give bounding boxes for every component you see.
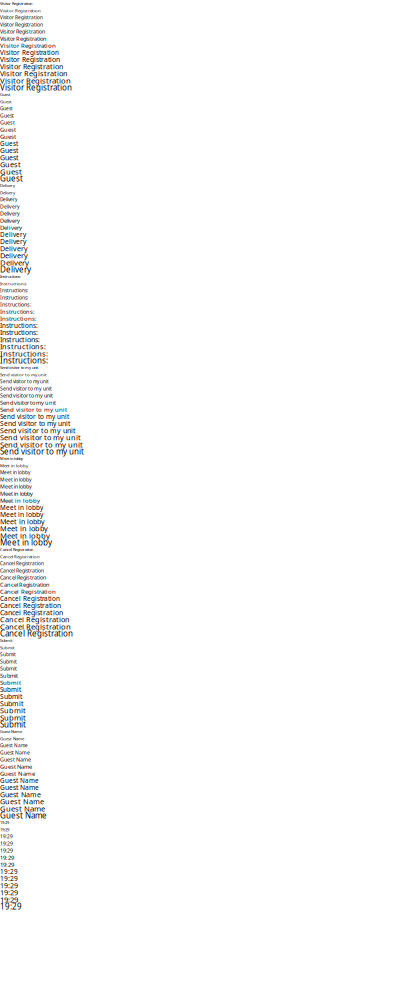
staticText: Instructions: <box>0 341 46 351</box>
staticText: Delivery <box>0 223 22 232</box>
staticText: Guest <box>0 132 16 141</box>
staticText: Cancel Registration <box>0 601 61 610</box>
staticText: Delivery <box>0 250 28 260</box>
staticText: Delivery <box>0 257 29 268</box>
staticText: Guest <box>0 139 18 148</box>
staticText: Send visitor to my unit <box>0 399 56 406</box>
staticText: Guest <box>0 166 22 177</box>
staticText: Visitor Registration <box>0 14 43 21</box>
staticText: 19:29 <box>0 826 9 832</box>
staticText: Submit <box>0 665 17 672</box>
staticText: 19:29 <box>0 887 18 897</box>
staticText: Instructions: <box>0 294 28 301</box>
staticText: Visitor Registration <box>0 1 32 6</box>
staticText: Guest <box>0 119 15 126</box>
staticText: Meet in lobby <box>0 476 32 483</box>
staticText: Guest Name <box>0 763 32 770</box>
staticText: Instructions: <box>0 287 28 294</box>
staticText: Guest Name <box>0 783 39 792</box>
staticText: 19:29 <box>0 860 14 869</box>
staticText: Delivery <box>0 230 26 239</box>
staticText: Cancel Registration <box>0 587 56 596</box>
staticText: Meet in lobby <box>0 496 40 505</box>
staticText: 19:29 <box>0 867 18 876</box>
staticText: 19:29 <box>0 881 18 890</box>
staticText: Visitor Registration <box>0 7 41 13</box>
staticText: Cancel Registration <box>0 594 60 603</box>
staticText: Delivery <box>0 189 15 195</box>
staticText: Guest <box>0 92 10 97</box>
staticText: Send visitor to my unit <box>0 439 83 450</box>
staticText: Meet in lobby <box>0 469 30 476</box>
staticText: Meet in lobby <box>0 523 48 533</box>
staticText: Meet in lobby <box>0 530 50 541</box>
staticText: Send visitor to my unit <box>0 392 53 399</box>
staticText: Guest <box>0 159 21 169</box>
staticText: Guest Name <box>0 756 31 763</box>
staticText: Instructions: <box>0 335 40 344</box>
staticText: Visitor Registration <box>0 62 63 71</box>
staticText: Guest Name <box>0 790 41 799</box>
staticText: Delivery <box>0 264 31 275</box>
staticText: Guest <box>0 98 12 104</box>
staticText: Visitor Registration <box>0 35 47 42</box>
staticText: Guest Name <box>0 735 24 741</box>
staticText: Send visitor to my unit <box>0 432 81 442</box>
staticText: Visitor Registration <box>0 48 59 57</box>
staticText: Visitor Registration <box>0 82 72 93</box>
staticText: Guest Name <box>0 729 22 734</box>
staticText: Submit <box>0 638 12 643</box>
staticText: Send visitor to my unit <box>0 426 76 435</box>
staticText: Guest <box>0 173 23 184</box>
staticText: Send visitor to my unit <box>0 412 69 421</box>
staticText: Instructions: <box>0 328 38 337</box>
staticText: Send visitor to my unit <box>0 365 38 370</box>
staticText: Submit <box>0 685 21 694</box>
staticText: Submit <box>0 672 18 679</box>
staticText: Guest <box>0 105 13 112</box>
staticText: Meet in lobby <box>0 462 28 468</box>
staticText: 19:29 <box>0 894 18 905</box>
staticText: Visitor Registration <box>0 41 56 50</box>
staticText: Cancel Registration <box>0 608 63 617</box>
staticText: Send visitor to my unit <box>0 446 84 457</box>
staticText: 19:29 <box>0 840 13 847</box>
staticText: Submit <box>0 678 21 687</box>
staticText: 19:29 <box>0 833 13 840</box>
staticText: Submit <box>0 699 24 708</box>
staticText: Instructions: <box>0 355 48 366</box>
staticText: Visitor Registration <box>0 75 71 86</box>
staticText: Guest <box>0 153 19 162</box>
staticText: Guest Name <box>0 776 39 785</box>
staticText: Send visitor to my unit <box>0 371 47 377</box>
staticText: Cancel Registration <box>0 581 50 588</box>
staticText: Meet in lobby <box>0 490 33 497</box>
staticText: Submit <box>0 705 26 715</box>
staticText: 19:29 <box>0 901 22 912</box>
staticText: 19:29 <box>0 874 18 883</box>
staticText: Submit <box>0 712 26 723</box>
staticText: Visitor Registration <box>0 21 43 28</box>
staticText: Cancel Registration <box>0 621 71 632</box>
staticText: Meet in lobby <box>0 503 43 512</box>
staticText: Submit <box>0 692 22 701</box>
staticText: Meet in lobby <box>0 537 52 548</box>
staticText: Meet in lobby <box>0 483 32 490</box>
staticText: Cancel Registration <box>0 553 40 559</box>
staticText: Meet in lobby <box>0 456 23 461</box>
staticText: Visitor Registration <box>0 68 68 78</box>
staticText: Send visitor to my unit <box>0 385 52 392</box>
staticText: Submit <box>0 644 15 650</box>
staticText: Guest Name <box>0 810 47 821</box>
staticText: Delivery <box>0 244 28 253</box>
staticText: Cancel Registration <box>0 574 46 581</box>
staticText: Delivery <box>0 210 20 217</box>
staticText: 19:29 <box>0 847 13 854</box>
staticText: Instructions: <box>0 301 31 308</box>
staticText: Submit <box>0 719 26 730</box>
staticText: Cancel Registration <box>0 614 70 624</box>
staticText: Delivery <box>0 237 26 246</box>
staticText: Guest <box>0 112 14 119</box>
staticText: Delivery <box>0 203 20 210</box>
staticText: Guest Name <box>0 769 35 778</box>
